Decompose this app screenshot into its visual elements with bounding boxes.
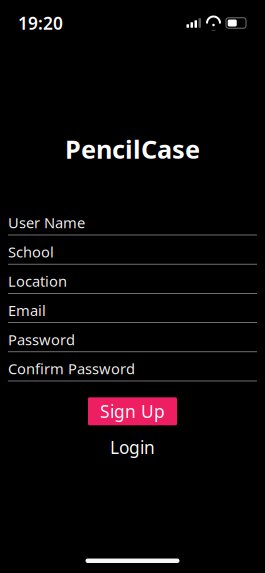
staticText: User Name (8, 213, 85, 232)
staticText: 19:20 (18, 11, 63, 34)
staticText: School (8, 242, 54, 262)
button[interactable]: Login (96, 435, 169, 459)
button[interactable]: Sign Up (88, 397, 177, 425)
staticText: Sign Up (100, 400, 165, 423)
staticText: Confirm Password (8, 359, 135, 378)
staticText: Email (8, 300, 46, 320)
staticText: Location (8, 271, 67, 291)
staticText: Password (8, 330, 75, 349)
staticText: Login (110, 436, 155, 459)
staticText: PencilCase (65, 132, 200, 166)
